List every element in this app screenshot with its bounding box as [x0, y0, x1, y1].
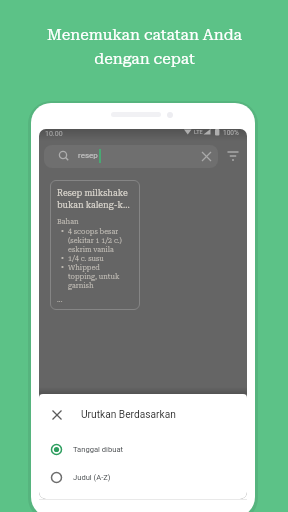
staticText: Urutkan Berdasarkan: [81, 409, 176, 421]
button[interactable]: resep: [44, 145, 218, 168]
staticText: Judul (A-Z): [73, 473, 111, 482]
staticText: •: [61, 227, 64, 235]
staticText: 4 scoops besar: [68, 227, 119, 235]
button[interactable]: Judul (A-Z): [51, 472, 111, 483]
staticText: LTE: [194, 129, 203, 135]
button[interactable]: Resep milkshake: [50, 180, 140, 310]
staticText: Whipped: [68, 263, 100, 271]
staticText: ...: [57, 295, 63, 303]
staticText: dengan cepat: [94, 50, 195, 68]
staticText: topping, untuk: [68, 272, 120, 280]
staticText: 10.00: [45, 130, 63, 138]
staticText: Menemukan catatan Anda: [47, 26, 242, 44]
staticText: 100%: [223, 129, 239, 137]
staticText: 1/4 c. susu: [68, 254, 104, 262]
button[interactable]: [52, 410, 62, 420]
staticText: resep: [78, 151, 98, 160]
button[interactable]: [201, 151, 212, 162]
staticText: Bahan: [57, 217, 79, 225]
staticText: garnish: [68, 281, 94, 289]
staticText: •: [61, 263, 64, 271]
staticText: •: [61, 254, 64, 262]
button[interactable]: [227, 150, 239, 162]
staticText: Tanggal dibuat: [73, 445, 124, 454]
staticText: bukan kaleng-k...: [57, 200, 130, 210]
button[interactable]: Tanggal dibuat: [51, 444, 124, 455]
staticText: (sekitar 1 1/2 c.): [68, 236, 122, 244]
staticText: eskrim vanila: [68, 245, 114, 253]
staticText: Resep milkshake: [57, 188, 128, 198]
